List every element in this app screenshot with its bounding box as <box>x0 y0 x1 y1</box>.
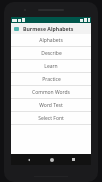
button[interactable]: Back <box>23 154 34 165</box>
button[interactable]: Practice <box>11 73 91 85</box>
button[interactable]: Common Words <box>11 86 91 98</box>
button[interactable]: Word Test <box>11 99 91 111</box>
staticText: Practice <box>42 76 61 83</box>
staticText: Alphabets <box>39 37 63 44</box>
staticText: Learn <box>44 63 58 70</box>
button[interactable]: Recent apps <box>68 154 79 165</box>
button[interactable]: Learn <box>11 60 91 72</box>
staticText: Common Words <box>32 89 70 96</box>
button[interactable]: Select Font <box>11 112 91 124</box>
button[interactable]: Home <box>46 154 57 165</box>
button[interactable]: Alphabets <box>11 34 91 46</box>
staticText: Select Font <box>38 115 64 122</box>
staticText: Describe <box>41 50 62 57</box>
button[interactable]: Describe <box>11 47 91 59</box>
staticText: Word Test <box>39 102 63 109</box>
button[interactable]: App icon <box>14 26 19 31</box>
staticText: Burmese Alphabets <box>23 25 74 32</box>
